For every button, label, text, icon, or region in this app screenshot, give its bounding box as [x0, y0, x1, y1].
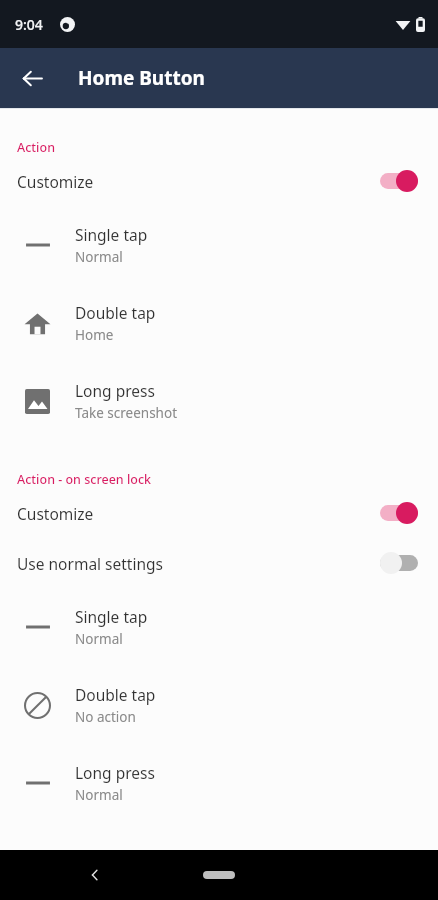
button[interactable]: Customize — [0, 488, 438, 538]
button[interactable]: Double tap — [0, 284, 438, 362]
staticText: Action - on screen lock — [17, 471, 152, 488]
staticText: Normal — [75, 630, 123, 648]
staticText: Home Button — [78, 65, 205, 91]
button[interactable]: Single tap — [0, 206, 438, 284]
button[interactable]: Back — [10, 56, 54, 100]
staticText: 9:04 — [15, 15, 43, 34]
staticText: Home — [75, 326, 114, 344]
staticText: Double tap — [75, 684, 156, 705]
staticText: No action — [75, 708, 136, 726]
staticText: Use normal settings — [17, 553, 380, 574]
button[interactable]: Back — [75, 855, 115, 895]
staticText: Normal — [75, 248, 123, 266]
staticText: Single tap — [75, 224, 148, 245]
button[interactable]: Single tap — [0, 588, 438, 666]
button[interactable]: Long press — [0, 362, 438, 440]
button[interactable]: Home — [194, 864, 244, 886]
staticText: Double tap — [75, 302, 156, 323]
staticText: Take screenshot — [75, 404, 178, 422]
button[interactable]: Long press — [0, 744, 438, 822]
button[interactable]: Customize — [0, 156, 438, 206]
staticText: Customize — [17, 171, 380, 192]
staticText: Long press — [75, 380, 155, 401]
staticText: Action — [17, 139, 55, 156]
staticText: Normal — [75, 786, 123, 804]
staticText: Customize — [17, 503, 380, 524]
button[interactable]: Use normal settings — [0, 538, 438, 588]
staticText: Single tap — [75, 606, 148, 627]
button[interactable]: Double tap — [0, 666, 438, 744]
staticText: Long press — [75, 762, 155, 783]
